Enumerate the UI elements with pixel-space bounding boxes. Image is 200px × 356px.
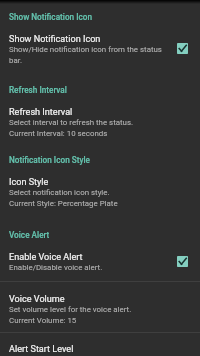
button[interactable]: Refresh Interval (0, 107, 200, 138)
button[interactable]: Show Notification Icon (0, 34, 200, 65)
staticText: Voice Alert (9, 230, 50, 240)
button[interactable]: Icon Style (0, 177, 200, 208)
staticText: Show Notification Icon (9, 34, 101, 45)
staticText: Show/Hide notification icon from the sta… (9, 45, 170, 65)
staticText: Icon Style (9, 177, 49, 188)
staticText: Voice Volume (9, 294, 65, 305)
button[interactable]: Voice Volume (0, 294, 200, 325)
staticText: Refresh Interval (9, 107, 73, 118)
staticText: Set volume level for the voice alert. Cu… (9, 305, 132, 325)
button[interactable]: Enable Voice Alert (0, 252, 200, 272)
staticText: Refresh Interval (9, 85, 67, 95)
staticText: Enable Voice Alert (9, 252, 83, 263)
staticText: Select interval to refresh the status. C… (9, 118, 134, 138)
button[interactable]: Alert Start Level (0, 344, 200, 355)
staticText: Select notification icon style. Current … (9, 188, 118, 208)
staticText: Notification Icon Style (9, 155, 90, 165)
staticText: Enable/Disable voice alert. (9, 263, 103, 272)
button[interactable]: Toggle setting (177, 256, 188, 267)
staticText: Alert Start Level (9, 344, 74, 355)
staticText: Show Notification Icon (9, 12, 92, 22)
button[interactable]: Toggle setting (177, 43, 188, 54)
